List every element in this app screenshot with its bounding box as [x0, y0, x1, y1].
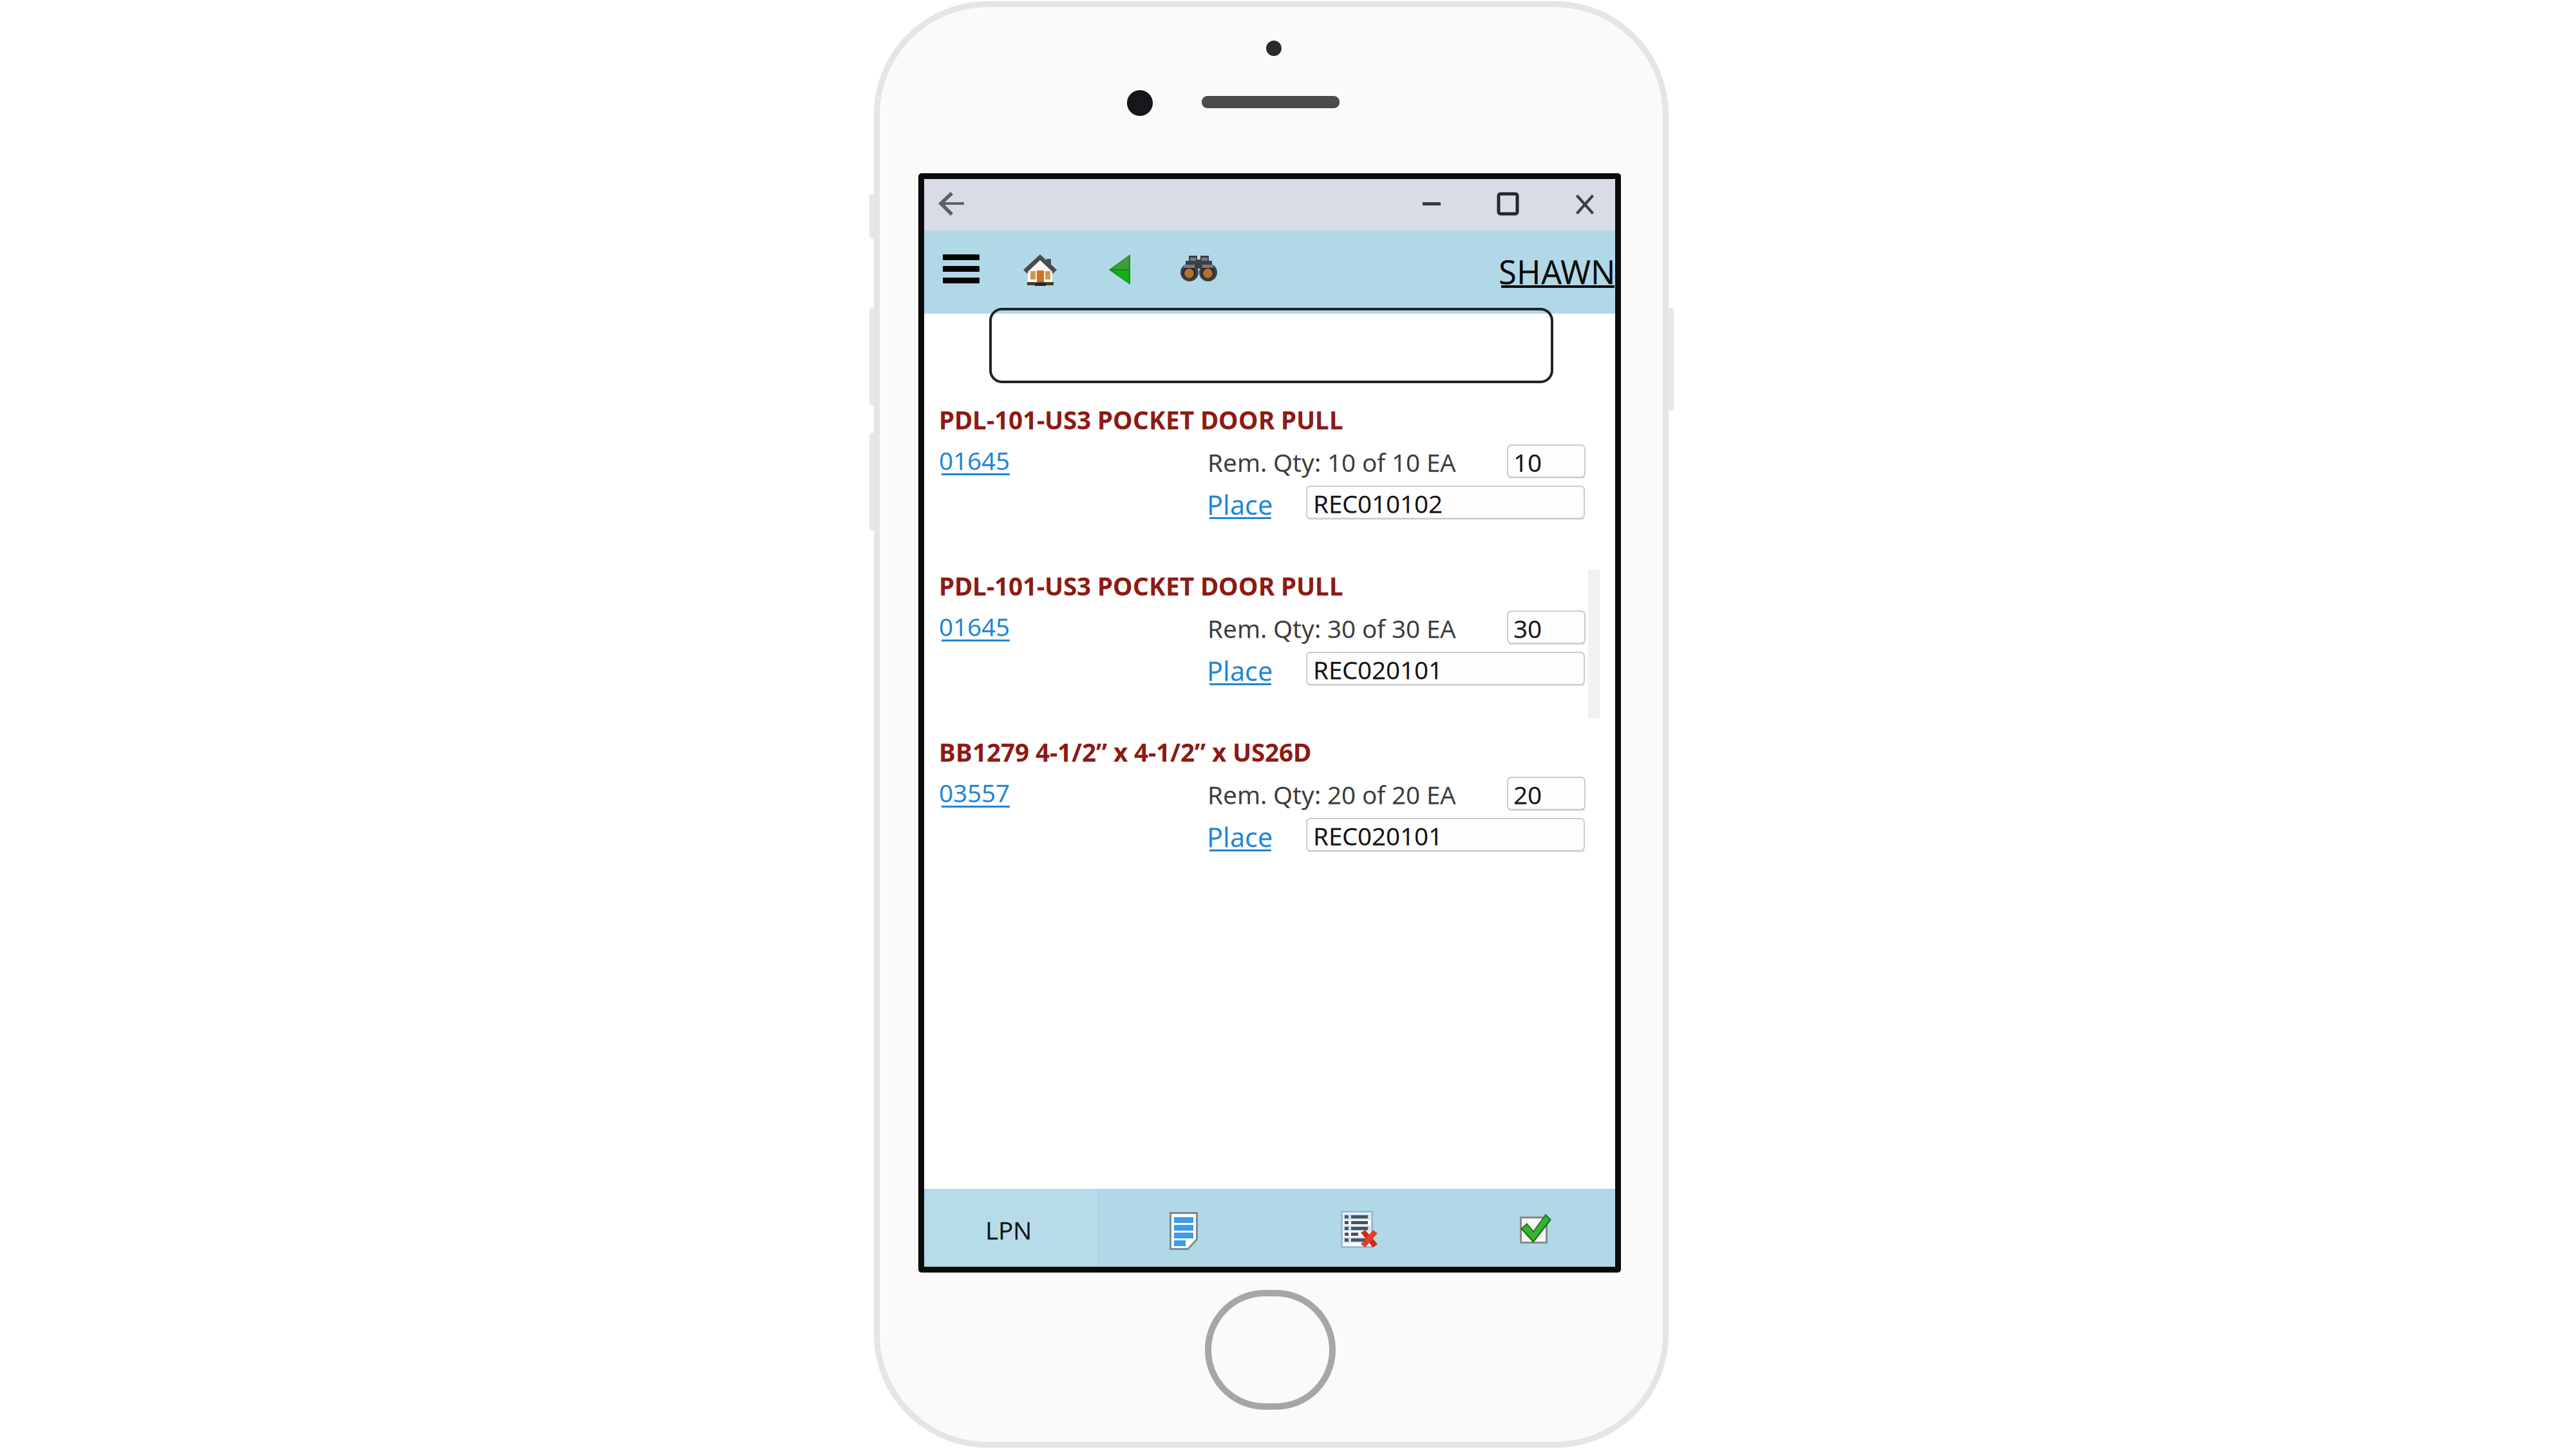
- staticText: 03557: [939, 776, 1010, 809]
- button[interactable]: LPN: [924, 1189, 1099, 1267]
- staticText: Place: [1207, 653, 1273, 688]
- button[interactable]: SHAWN: [1501, 254, 1617, 289]
- staticText: REC010102: [1313, 487, 1443, 520]
- button[interactable]: Search: [1180, 256, 1217, 281]
- button[interactable]: 03557: [942, 782, 1014, 810]
- button[interactable]: 01645: [942, 616, 1014, 644]
- staticText: 01645: [939, 610, 1010, 643]
- button[interactable]: Place: [1209, 823, 1274, 853]
- staticText: PDL-101-US3 POCKET DOOR PULL: [939, 403, 1343, 436]
- staticText: Place: [1207, 487, 1273, 522]
- staticText: PDL-101-US3 POCKET DOOR PULL: [939, 569, 1343, 602]
- button[interactable]: Back: [938, 192, 965, 216]
- button[interactable]: Minimize: [1423, 202, 1441, 205]
- staticText: Place: [1207, 819, 1273, 855]
- staticText: REC020101: [1313, 653, 1443, 686]
- button[interactable]: Notes: [1169, 1211, 1199, 1248]
- button[interactable]: Go back: [1109, 254, 1130, 285]
- staticText: BB1279 4-1/2” x 4-1/2” x US26D: [939, 735, 1311, 768]
- staticText: 30: [1513, 612, 1542, 645]
- staticText: Rem. Qty: 10 of 10 EA: [1207, 446, 1456, 479]
- button[interactable]: Remove from list: [1341, 1211, 1378, 1249]
- staticText: 10: [1513, 446, 1542, 479]
- button[interactable]: Close: [1576, 194, 1594, 214]
- staticText: LPN: [985, 1213, 1032, 1246]
- button[interactable]: Maximize: [1499, 194, 1517, 214]
- button[interactable]: 01645: [942, 450, 1014, 478]
- button[interactable]: Home: [1023, 252, 1057, 287]
- staticText: 20: [1513, 778, 1542, 811]
- staticText: 01645: [939, 444, 1010, 477]
- button[interactable]: Confirm: [1520, 1214, 1551, 1244]
- staticText: Rem. Qty: 30 of 30 EA: [1207, 612, 1456, 645]
- staticText: Rem. Qty: 20 of 20 EA: [1207, 778, 1456, 811]
- button[interactable]: Place: [1209, 491, 1274, 520]
- button[interactable]: Place: [1209, 657, 1274, 687]
- staticText: REC020101: [1313, 819, 1443, 852]
- staticText: SHAWN: [1499, 250, 1616, 293]
- button[interactable]: Menu: [943, 254, 980, 283]
